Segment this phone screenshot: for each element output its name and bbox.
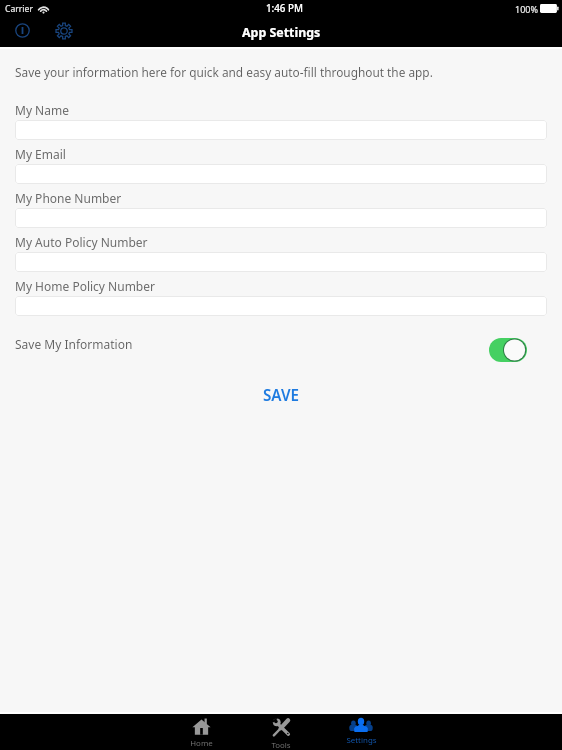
button[interactable]: SAVE [245,380,318,411]
staticText: 1:46 PM [266,2,303,15]
button[interactable]: Home [161,714,241,750]
staticText: 100% [515,3,538,15]
button[interactable]: Settings [321,714,401,750]
button[interactable] [15,208,547,228]
staticText: My Name [15,102,69,118]
staticText: My Email [15,146,66,162]
staticText: Home [190,738,213,749]
staticText: My Auto Policy Number [15,234,148,250]
staticText: App Settings [242,24,321,41]
staticText: Settings [346,735,377,746]
button[interactable]: Save My Information toggle [489,338,527,362]
staticText: My Phone Number [15,190,122,206]
button[interactable]: Info [9,17,36,44]
staticText: My Home Policy Number [15,278,155,294]
button[interactable] [15,296,547,316]
button[interactable] [15,120,547,140]
staticText: Tools [271,740,291,750]
button[interactable] [15,164,547,184]
staticText: SAVE [263,385,300,406]
staticText: Carrier [5,3,33,15]
staticText: Save your information here for quick and… [15,64,433,80]
button[interactable]: Settings [50,17,77,44]
staticText: Save My Information [15,336,133,352]
button[interactable]: Tools [241,714,321,750]
button[interactable] [15,252,547,272]
